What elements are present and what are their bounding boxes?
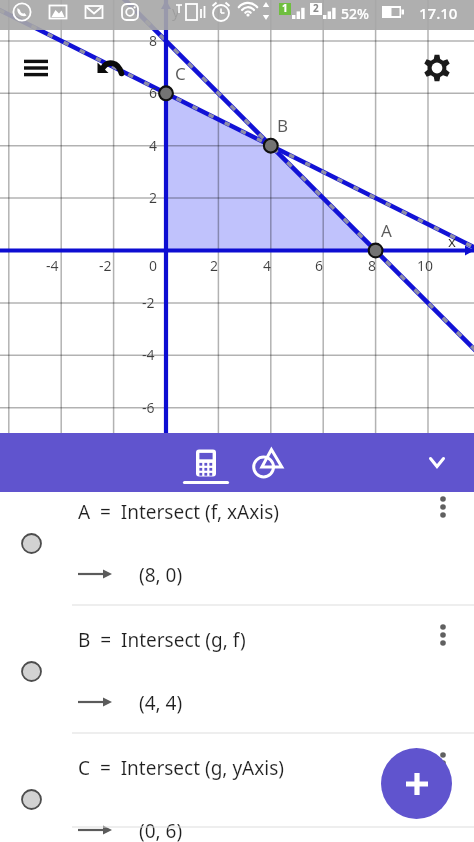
- staticText: (8, 0): [139, 562, 183, 588]
- button[interactable]: Settings: [414, 45, 460, 91]
- button[interactable]: Toggle visibility of C: [21, 789, 42, 810]
- staticText: A = Intersect (f, xAxis): [78, 499, 279, 525]
- staticText: -6: [142, 398, 155, 417]
- staticText: y: [172, 1, 180, 21]
- button[interactable]: Menu: [13, 45, 59, 91]
- staticText: 10: [417, 256, 434, 275]
- button[interactable]: Geometry: [245, 433, 289, 492]
- staticText: C: [175, 62, 186, 85]
- staticText: 4: [149, 136, 158, 155]
- button[interactable]: Toggle visibility of C: [0, 734, 474, 828]
- staticText: C = Intersect (g, yAxis): [78, 755, 284, 781]
- staticText: -4: [46, 256, 59, 275]
- staticText: 2: [210, 256, 219, 275]
- staticText: 1: [282, 1, 288, 15]
- staticText: B: [277, 114, 289, 137]
- staticText: A: [381, 219, 392, 242]
- button[interactable]: Add: [381, 748, 452, 819]
- button[interactable]: Collapse: [414, 433, 460, 492]
- staticText: -2: [142, 293, 155, 312]
- staticText: 2: [313, 1, 319, 15]
- staticText: (4, 4): [139, 690, 183, 716]
- button[interactable]: Toggle visibility of A: [0, 478, 474, 606]
- button[interactable]: More options: [428, 492, 458, 522]
- button[interactable]: More options: [428, 620, 458, 650]
- staticText: (0, 6): [139, 818, 183, 842]
- staticText: 0: [149, 256, 158, 275]
- staticText: 6: [149, 83, 158, 102]
- button[interactable]: Toggle visibility of B: [0, 606, 474, 734]
- staticText: 6: [315, 256, 324, 275]
- staticText: 2: [149, 188, 158, 207]
- button[interactable]: Toggle visibility of A: [21, 533, 42, 554]
- staticText: 52%: [341, 4, 369, 23]
- staticText: -2: [99, 256, 112, 275]
- button[interactable]: Toggle visibility of B: [21, 661, 42, 682]
- staticText: 8: [368, 256, 377, 275]
- staticText: -4: [142, 345, 155, 364]
- staticText: 8: [149, 31, 158, 50]
- button[interactable]: More options: [428, 748, 458, 778]
- button[interactable]: Undo: [89, 46, 133, 90]
- staticText: 4: [263, 256, 272, 275]
- staticText: x: [448, 231, 456, 251]
- staticText: 17.10: [419, 3, 458, 23]
- staticText: B = Intersect (g, f): [78, 627, 246, 653]
- button[interactable]: Calculator: [184, 433, 228, 492]
